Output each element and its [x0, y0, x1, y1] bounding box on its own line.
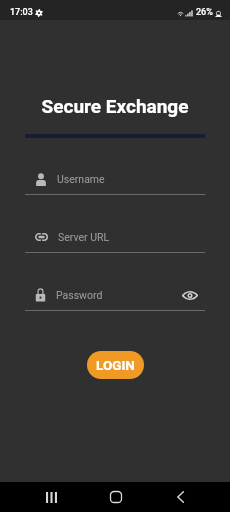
button[interactable]: Server URL [25, 225, 205, 249]
button[interactable]: Recents [31, 482, 71, 512]
staticText: Server URL [58, 231, 110, 243]
staticText: Secure Exchange [0, 95, 230, 117]
button[interactable]: Home [96, 482, 136, 512]
button[interactable]: Password [25, 283, 205, 307]
button[interactable]: LOGIN [87, 351, 144, 379]
staticText: Username [57, 173, 105, 185]
staticText: LOGIN [96, 357, 135, 373]
button[interactable]: Toggle password visibility [179, 284, 201, 306]
staticText: 17:03 [10, 7, 33, 18]
staticText: 26% [196, 7, 213, 18]
button[interactable]: Back [160, 482, 200, 512]
button[interactable]: Username [25, 167, 205, 191]
staticText: Password [56, 289, 103, 301]
